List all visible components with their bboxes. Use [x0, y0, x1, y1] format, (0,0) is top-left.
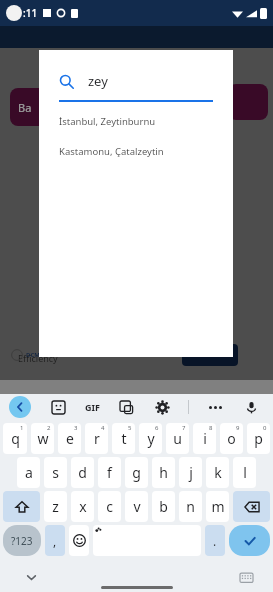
staticText: s	[52, 463, 59, 482]
button[interactable]: Done	[229, 525, 270, 556]
staticText: 2	[47, 424, 51, 432]
staticText: 3	[74, 424, 78, 432]
button[interactable]: q	[3, 423, 27, 454]
staticText: n	[186, 497, 195, 516]
button[interactable]: Hide keyboard	[22, 568, 40, 586]
button[interactable]: Stickers	[48, 397, 68, 417]
button[interactable]: d	[71, 457, 94, 488]
staticText: ?123	[11, 534, 33, 548]
staticText: 6	[155, 424, 159, 432]
staticText: Kastamonu, Çatalzeytin	[59, 145, 164, 158]
staticText: ,	[53, 533, 57, 549]
button[interactable]: h	[152, 457, 175, 488]
staticText: x	[79, 497, 87, 516]
button[interactable]: Backspace	[233, 491, 270, 522]
staticText: z	[52, 497, 59, 516]
button[interactable]: s	[44, 457, 67, 488]
button[interactable]: g	[125, 457, 148, 488]
staticText: f	[107, 463, 112, 482]
button[interactable]: t	[112, 423, 135, 454]
staticText: Ba	[18, 100, 32, 115]
staticText: w	[37, 429, 49, 448]
staticText: q	[11, 429, 20, 448]
staticText: GIF	[85, 401, 100, 413]
staticText: c	[106, 497, 113, 516]
button[interactable]: Translate	[116, 397, 136, 417]
staticText: a	[25, 463, 33, 482]
button[interactable]: l	[233, 457, 256, 488]
staticText: j	[189, 463, 193, 482]
staticText: i	[203, 429, 207, 448]
button[interactable]: p	[247, 423, 270, 454]
staticText: Efficiency	[18, 352, 58, 364]
button[interactable]: GIF	[85, 401, 100, 413]
staticText: v	[133, 497, 141, 516]
button[interactable]: x	[71, 491, 94, 522]
staticText: g	[132, 463, 141, 482]
button[interactable]: v	[125, 491, 148, 522]
staticText: 7	[182, 424, 186, 432]
staticText: t	[121, 429, 127, 448]
button[interactable]: .	[205, 525, 225, 556]
button[interactable]: w	[31, 423, 54, 454]
button[interactable]: j	[179, 457, 202, 488]
staticText: 9	[236, 424, 240, 432]
button[interactable]: ?123	[3, 525, 41, 556]
button[interactable]: c	[98, 491, 121, 522]
staticText: r	[94, 429, 100, 448]
button[interactable]: Space	[93, 525, 201, 556]
button[interactable]: Settings	[152, 397, 172, 417]
button[interactable]: ,	[45, 525, 65, 556]
staticText: DCMG	[26, 351, 45, 359]
staticText: 1	[20, 424, 24, 432]
button[interactable]: n	[179, 491, 202, 522]
button[interactable]: Voice input	[241, 397, 261, 417]
button[interactable]	[182, 344, 238, 366]
staticText: k	[214, 463, 222, 482]
staticText: d	[78, 463, 87, 482]
button[interactable]: o	[220, 423, 243, 454]
staticText: 4	[101, 424, 105, 432]
staticText: b	[159, 497, 168, 516]
button[interactable]: z	[44, 491, 67, 522]
staticText: İstanbul, Zeytinburnu	[59, 115, 156, 128]
button[interactable]: Shift	[3, 491, 40, 522]
button[interactable]: e	[58, 423, 81, 454]
button[interactable]: a	[17, 457, 40, 488]
button[interactable]: u	[166, 423, 189, 454]
button[interactable]: k	[206, 457, 229, 488]
button[interactable]: i	[193, 423, 216, 454]
staticText: e	[66, 429, 74, 448]
button[interactable]: r	[85, 423, 108, 454]
staticText: m	[211, 497, 225, 516]
button[interactable]: Back	[9, 396, 31, 418]
staticText: y	[147, 429, 155, 448]
staticText: 0	[263, 424, 267, 432]
button[interactable]: b	[152, 491, 175, 522]
staticText: h	[159, 463, 168, 482]
staticText: 5	[128, 424, 132, 432]
button[interactable]: f	[98, 457, 121, 488]
other: Search	[59, 74, 74, 89]
staticText: .	[213, 533, 217, 549]
staticText: zey	[88, 72, 108, 90]
staticText: u	[173, 429, 182, 448]
button[interactable]: Kastamonu, Çatalzeytin	[39, 143, 233, 159]
staticText: p	[254, 429, 263, 448]
button[interactable]: y	[139, 423, 162, 454]
button[interactable]: Emoji	[69, 525, 89, 556]
button[interactable]: More options	[205, 397, 225, 417]
staticText: o	[227, 429, 236, 448]
staticText: :11	[23, 6, 38, 20]
staticText: l	[243, 463, 247, 482]
staticText: 8	[209, 424, 213, 432]
button[interactable]: İstanbul, Zeytinburnu	[39, 113, 233, 129]
button[interactable]: m	[206, 491, 229, 522]
button[interactable]: Switch keyboard	[237, 568, 255, 586]
